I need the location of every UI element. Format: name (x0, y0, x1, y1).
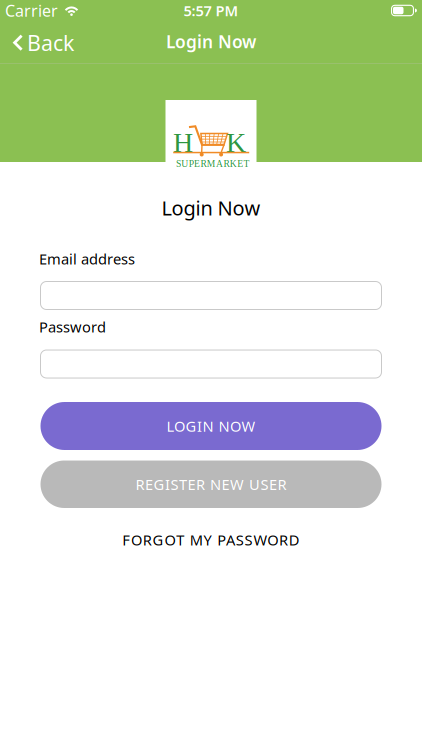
staticText: REGISTER NEW USER (135, 474, 286, 494)
staticText: Back (27, 28, 74, 57)
staticText: Password (39, 317, 106, 336)
staticText: K (226, 127, 246, 158)
staticText: FORGOT MY PASSWORD (122, 530, 300, 549)
staticText: Login Now (166, 30, 256, 53)
button[interactable]: Password (40, 349, 382, 378)
staticText: SUPERMARKET (176, 158, 249, 169)
staticText: Carrier (5, 0, 58, 21)
button[interactable]: LOGIN NOW (40, 402, 381, 450)
button[interactable]: Email address (40, 281, 382, 310)
button[interactable]: Back (13, 28, 74, 57)
staticText: 5:57 PM (183, 1, 238, 20)
staticText: H (173, 127, 193, 158)
staticText: LOGIN NOW (166, 416, 255, 436)
staticText: Email address (39, 249, 135, 268)
button[interactable]: REGISTER NEW USER (40, 460, 381, 508)
button[interactable]: FORGOT MY PASSWORD (122, 530, 300, 549)
staticText: Login Now (161, 194, 260, 221)
